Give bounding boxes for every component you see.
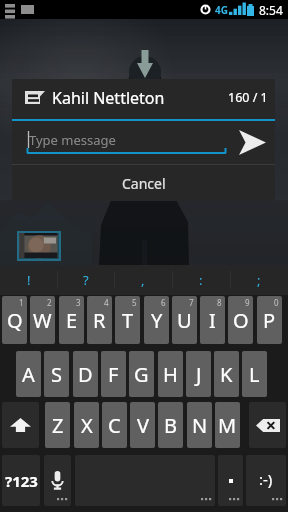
- button[interactable]: Z: [45, 402, 70, 448]
- staticText: K: [220, 361, 233, 388]
- button[interactable]: N: [187, 402, 212, 448]
- button[interactable]: H: [158, 351, 183, 397]
- staticText: 6: [161, 297, 166, 308]
- staticText: S: [51, 361, 62, 388]
- staticText: 2: [47, 297, 52, 308]
- staticText: 3: [76, 297, 81, 308]
- button[interactable]: ?: [57, 265, 114, 295]
- button[interactable]: X: [74, 402, 99, 448]
- staticText: H: [163, 361, 178, 388]
- staticText: Y: [151, 307, 163, 334]
- button[interactable]: S: [44, 351, 69, 397]
- staticText: L: [249, 361, 260, 388]
- button[interactable]: Q: [2, 296, 27, 344]
- staticText: A: [22, 361, 35, 388]
- button[interactable]: :: [172, 265, 230, 295]
- button[interactable]: L: [242, 351, 267, 397]
- staticText: 7: [189, 297, 194, 308]
- staticText: 5: [132, 297, 137, 308]
- button[interactable]: U: [172, 296, 197, 344]
- staticText: C: [108, 412, 121, 439]
- staticText: P: [263, 307, 276, 334]
- staticText: Cancel: [122, 174, 166, 193]
- button[interactable]: M: [215, 402, 240, 448]
- staticText: O: [233, 307, 249, 334]
- button[interactable]: A: [16, 351, 41, 397]
- button[interactable]: Attached photo: [17, 231, 61, 261]
- staticText: 8:54: [259, 2, 283, 18]
- button[interactable]: J: [186, 351, 211, 397]
- button[interactable]: O: [228, 296, 253, 344]
- staticText: R: [93, 307, 106, 334]
- button[interactable]: T: [115, 296, 140, 344]
- button[interactable]: Type message: [12, 121, 229, 164]
- button[interactable]: E: [59, 296, 84, 344]
- staticText: 0: [274, 297, 279, 308]
- staticText: Kahil Nettleton: [52, 87, 165, 109]
- staticText: :-): [259, 469, 273, 489]
- button[interactable]: ;: [230, 265, 288, 295]
- staticText: W: [33, 307, 52, 334]
- staticText: 160 / 1: [228, 89, 268, 106]
- button[interactable]: V: [130, 402, 155, 448]
- button[interactable]: K: [214, 351, 239, 397]
- button[interactable]: :-): [246, 455, 286, 506]
- staticText: !: [27, 271, 31, 289]
- staticText: U: [177, 307, 192, 334]
- button[interactable]: C: [102, 402, 127, 448]
- button[interactable]: R: [87, 296, 112, 344]
- staticText: B: [164, 412, 177, 439]
- button[interactable]: !: [0, 265, 57, 295]
- button[interactable]: Send: [229, 121, 275, 164]
- button[interactable]: ?123: [2, 455, 40, 506]
- button[interactable]: F: [101, 351, 126, 397]
- staticText: 4: [104, 297, 109, 308]
- staticText: E: [66, 307, 78, 334]
- button[interactable]: I: [200, 296, 225, 344]
- staticText: ;: [257, 271, 261, 289]
- staticText: T: [122, 307, 134, 334]
- staticText: N: [192, 412, 208, 439]
- button[interactable]: G: [129, 351, 154, 397]
- button[interactable]: D: [73, 351, 98, 397]
- staticText: ,: [141, 271, 145, 289]
- staticText: G: [134, 361, 149, 388]
- button[interactable]: Shift: [2, 402, 39, 448]
- button[interactable]: P: [257, 296, 282, 344]
- staticText: V: [137, 412, 149, 439]
- button[interactable]: ,: [114, 265, 172, 295]
- button[interactable]: Voice input: [44, 455, 71, 506]
- staticText: Type message: [29, 131, 116, 149]
- staticText: 1: [19, 297, 24, 308]
- staticText: 9: [245, 297, 250, 308]
- button[interactable]: Cancel: [12, 165, 275, 201]
- staticText: Z: [52, 412, 64, 439]
- button[interactable]: B: [158, 402, 183, 448]
- staticText: F: [108, 361, 119, 388]
- button[interactable]: Space: [75, 455, 215, 506]
- staticText: X: [81, 412, 93, 439]
- button[interactable]: [218, 455, 243, 506]
- staticText: ?123: [5, 471, 38, 491]
- button[interactable]: W: [30, 296, 55, 344]
- button[interactable]: Backspace: [249, 402, 286, 448]
- staticText: J: [196, 361, 202, 388]
- staticText: D: [78, 361, 93, 388]
- staticText: 8: [217, 297, 222, 308]
- staticText: ?: [83, 271, 89, 289]
- button[interactable]: Y: [144, 296, 169, 344]
- staticText: :: [199, 271, 203, 289]
- staticText: 4G: [215, 3, 228, 17]
- staticText: M: [218, 412, 237, 439]
- staticText: I: [209, 307, 216, 334]
- staticText: Q: [7, 307, 23, 334]
